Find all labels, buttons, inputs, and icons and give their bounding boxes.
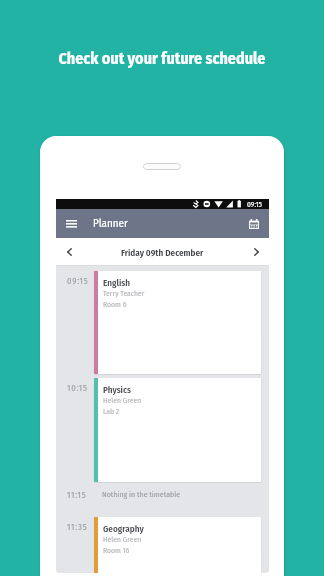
staticText: Terry Teacher [103, 289, 145, 298]
staticText: Room 16 [103, 546, 130, 555]
staticText: Physics [103, 384, 131, 395]
staticText: Friday 09th December [121, 247, 204, 258]
button[interactable]: Physics [94, 378, 261, 482]
staticText: 11:15 [67, 490, 87, 500]
button[interactable]: Next day [243, 238, 269, 266]
staticText: Helen Green [103, 396, 142, 405]
staticText: Geography [103, 523, 144, 534]
staticText: 09:15 [67, 276, 89, 286]
staticText: Check out your future schedule [0, 49, 324, 68]
staticText: Planner [93, 217, 128, 230]
button[interactable]: English [94, 271, 261, 374]
staticText: 10:15 [67, 383, 88, 393]
button[interactable]: Previous day [56, 238, 82, 266]
staticText: English [103, 277, 130, 288]
staticText: Lab 2 [103, 407, 120, 416]
button[interactable]: Geography [94, 517, 261, 573]
button[interactable]: Calendar [240, 209, 268, 238]
button[interactable]: Open navigation menu [57, 209, 85, 238]
staticText: Room 6 [103, 300, 127, 309]
staticText: Nothing in the timetable [102, 490, 181, 499]
staticText: 09:15 [247, 200, 262, 209]
staticText: 11:35 [67, 522, 88, 532]
staticText: Helen Green [103, 535, 142, 544]
